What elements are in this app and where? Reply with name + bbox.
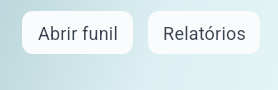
button[interactable]: Relatórios: [148, 11, 260, 54]
staticText: Abrir funil: [38, 23, 118, 44]
button[interactable]: Abrir funil: [22, 11, 133, 54]
staticText: Relatórios: [163, 23, 246, 44]
